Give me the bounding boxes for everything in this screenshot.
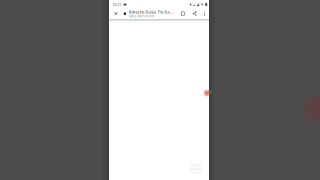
- staticText: Riding the Banjo: The Ba…: [129, 9, 173, 14]
- staticText: 10:21: [112, 2, 121, 7]
- button[interactable]: Close: [113, 11, 118, 16]
- staticText: banjo.fandom.com: [129, 14, 154, 18]
- button[interactable]: Save offline: [181, 11, 185, 17]
- button[interactable]: More options: [204, 11, 205, 17]
- button[interactable]: Share: [192, 11, 197, 17]
